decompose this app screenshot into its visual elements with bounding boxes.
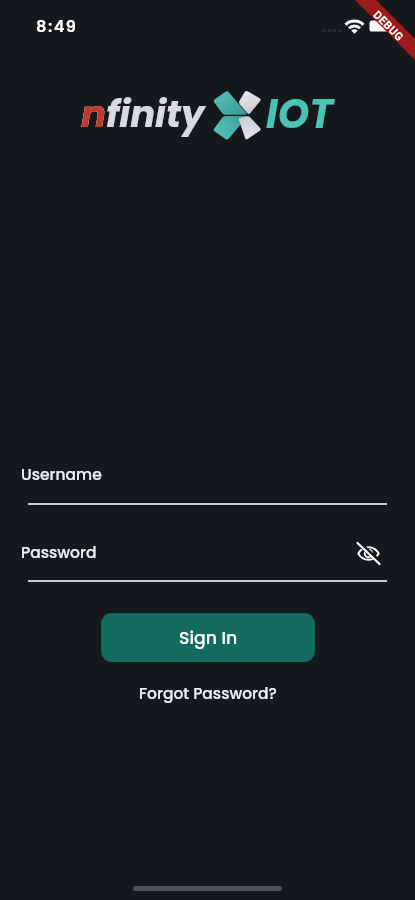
staticText: nfinity	[81, 88, 205, 140]
staticText: Sign In	[179, 626, 238, 650]
staticText: Username	[21, 464, 102, 486]
staticText: DEBUG	[371, 8, 407, 44]
staticText: IOT	[266, 86, 333, 142]
button[interactable]: Show password	[355, 540, 382, 567]
staticText: Forgot Password?	[139, 683, 277, 705]
staticText: 8:49	[36, 15, 78, 38]
button[interactable]: Forgot Password?	[0, 683, 415, 705]
staticText: n	[81, 88, 106, 140]
button[interactable]: Sign In	[101, 613, 315, 662]
staticText: Password	[21, 542, 97, 564]
